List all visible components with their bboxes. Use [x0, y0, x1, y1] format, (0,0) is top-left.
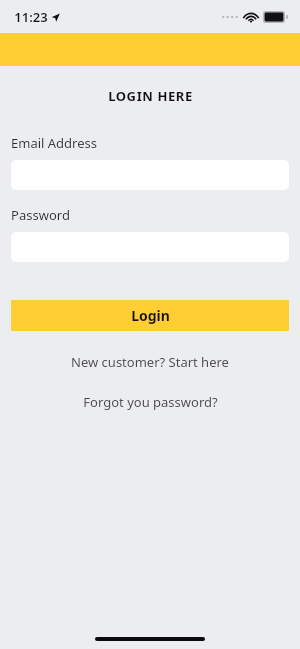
staticText: Login [131, 306, 170, 325]
staticText: Email Address [11, 134, 97, 152]
other: Home indicator [95, 637, 205, 641]
staticText: Forgot you password? [83, 393, 218, 411]
staticText: 11:23 [14, 8, 48, 26]
staticText: New customer? Start here [71, 353, 229, 371]
button[interactable]: Login [11, 300, 289, 331]
button[interactable]: New customer? Start here [0, 353, 300, 371]
staticText: Password [11, 206, 70, 224]
staticText: LOGIN HERE [108, 87, 193, 105]
button[interactable]: Forgot you password? [0, 393, 300, 411]
